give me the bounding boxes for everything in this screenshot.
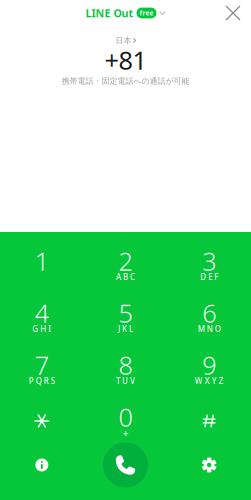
button[interactable]: Settings	[167, 439, 251, 491]
staticText: 3	[202, 244, 216, 278]
button[interactable]: LINE Out	[85, 4, 165, 22]
staticText: 6	[202, 296, 216, 330]
button[interactable]: Call	[84, 439, 167, 491]
button[interactable]: 3	[167, 239, 251, 291]
staticText: 携帯電話・固定電話への通話が可能	[61, 76, 189, 86]
staticText: ABC	[116, 272, 135, 282]
staticText: LINE Out	[85, 6, 133, 20]
staticText: DEF	[200, 272, 218, 282]
staticText: 7	[35, 348, 49, 382]
staticText: 0	[118, 400, 132, 434]
staticText: 2	[118, 244, 132, 278]
button[interactable]: 2	[84, 239, 167, 291]
button[interactable]: 0	[84, 395, 167, 447]
button[interactable]: Star	[0, 395, 84, 447]
staticText: WXYZ	[195, 376, 224, 386]
button[interactable]: 4	[0, 291, 84, 343]
staticText: PQRS	[29, 376, 55, 386]
staticText: 5	[118, 296, 132, 330]
button[interactable]: 7	[0, 343, 84, 395]
button[interactable]: 5	[84, 291, 167, 343]
button[interactable]: 6	[167, 291, 251, 343]
staticText: +81	[104, 43, 146, 77]
button[interactable]: 9	[167, 343, 251, 395]
staticText: GHI	[32, 324, 51, 334]
staticText: MNO	[198, 324, 221, 334]
staticText: free	[139, 9, 153, 17]
button[interactable]: 1	[0, 239, 84, 291]
button[interactable]: Pound	[167, 395, 251, 447]
staticText: 9	[202, 348, 216, 382]
staticText: 1	[35, 244, 49, 278]
staticText: TUV	[116, 376, 135, 386]
button[interactable]: Information	[0, 439, 84, 491]
staticText: 4	[35, 296, 49, 330]
staticText: 日本	[115, 36, 131, 45]
button[interactable]: 8	[84, 343, 167, 395]
staticText: JKL	[118, 324, 133, 334]
staticText: +	[122, 426, 128, 440]
button[interactable]: Close	[219, 0, 247, 27]
staticText: 8	[118, 348, 132, 382]
button[interactable]: 日本	[115, 34, 136, 47]
